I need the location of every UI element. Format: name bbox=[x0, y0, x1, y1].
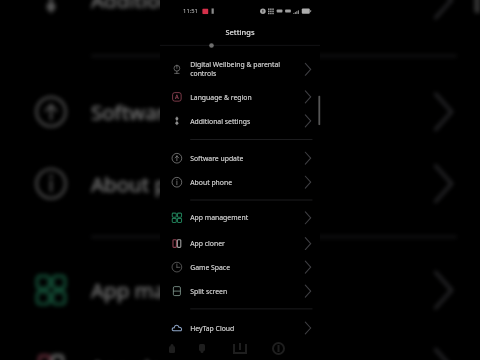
staticText: Language & region bbox=[190, 92, 252, 102]
staticText: Software update bbox=[91, 98, 251, 126]
staticText: About phone bbox=[190, 178, 232, 187]
button[interactable]: App management bbox=[0, 254, 479, 326]
button[interactable]: HeyTap Cloud bbox=[160, 316, 320, 340]
button[interactable]: Split screen bbox=[160, 279, 320, 303]
staticText: Digital Wellbeing & parental controls bbox=[190, 60, 280, 79]
button[interactable]: Software update bbox=[160, 146, 320, 170]
staticText: Additional settings bbox=[190, 116, 251, 126]
button[interactable]: Language & region bbox=[160, 85, 320, 109]
button[interactable]: Software update bbox=[0, 76, 479, 148]
button[interactable]: About phone bbox=[160, 170, 320, 194]
staticText: App cloner bbox=[190, 239, 225, 248]
button[interactable]: App management bbox=[160, 206, 320, 230]
button[interactable]: About phone bbox=[0, 148, 479, 220]
staticText: Additional settings bbox=[91, 0, 272, 15]
staticText: HeyTap Cloud bbox=[190, 324, 235, 333]
staticText: Split screen bbox=[190, 287, 227, 296]
staticText: 11:51 bbox=[183, 7, 198, 15]
staticText: Settings bbox=[225, 27, 255, 37]
staticText: App management bbox=[91, 277, 265, 305]
staticText: Software update bbox=[190, 154, 243, 163]
staticText: App management bbox=[190, 213, 248, 223]
staticText: Game Space bbox=[190, 263, 230, 272]
button[interactable]: App cloner bbox=[0, 331, 479, 360]
button[interactable]: Additional settings bbox=[160, 109, 320, 133]
button[interactable]: Game Space bbox=[160, 255, 320, 279]
button[interactable]: Digital Wellbeing & parental controls bbox=[160, 52, 320, 86]
button[interactable]: Additional settings bbox=[0, 0, 479, 36]
button[interactable]: App cloner bbox=[160, 232, 320, 256]
staticText: About phone bbox=[91, 170, 217, 198]
